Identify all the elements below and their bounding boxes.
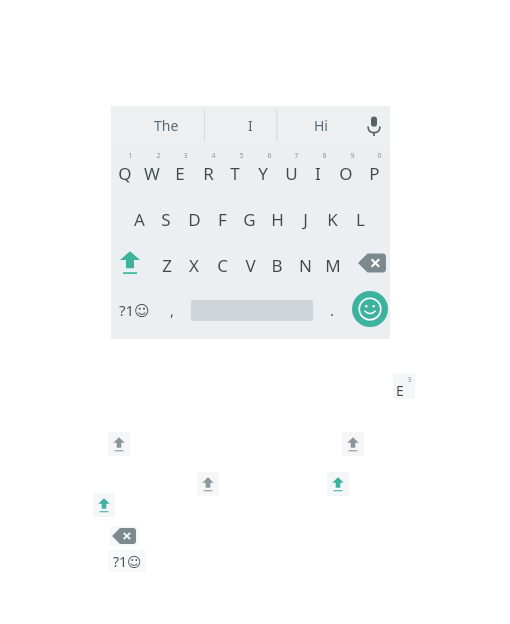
staticText: Z (162, 254, 172, 277)
staticText: E (396, 381, 404, 400)
button[interactable] (152, 196, 180, 238)
button[interactable]: I (219, 108, 281, 143)
button[interactable] (166, 149, 194, 193)
button[interactable] (208, 196, 236, 238)
staticText: 6 (267, 151, 272, 161)
button[interactable]: Shift (327, 472, 349, 496)
button[interactable]: . (318, 290, 346, 330)
button[interactable] (277, 149, 305, 193)
staticText: The (154, 116, 179, 135)
staticText: 4 (211, 151, 216, 161)
staticText: I (315, 162, 321, 185)
staticText: 5 (239, 151, 244, 161)
button[interactable]: Hi (290, 108, 352, 143)
button[interactable] (190, 290, 314, 330)
staticText: Q (118, 162, 132, 185)
staticText: N (299, 254, 312, 277)
button[interactable] (125, 196, 153, 238)
button[interactable]: , (157, 290, 187, 330)
button[interactable]: Shift (93, 493, 115, 517)
staticText: Hi (314, 116, 328, 135)
button[interactable]: The (131, 108, 201, 143)
staticText: X (189, 254, 199, 277)
button[interactable]: Shift (197, 472, 219, 496)
staticText: 0 (377, 151, 382, 161)
staticText: , (170, 300, 175, 320)
staticText: V (245, 254, 256, 277)
staticText: ?1☺ (113, 552, 142, 571)
staticText: Y (258, 162, 268, 185)
staticText: 3 (407, 375, 412, 385)
button[interactable] (319, 196, 347, 238)
staticText: C (217, 254, 228, 277)
button[interactable] (180, 196, 208, 238)
button[interactable] (222, 149, 250, 193)
button[interactable]: Shift (113, 242, 147, 284)
button[interactable] (393, 373, 415, 399)
button[interactable] (332, 149, 360, 193)
button[interactable] (208, 242, 236, 284)
staticText: F (218, 208, 227, 231)
staticText: U (285, 162, 298, 185)
button[interactable]: Emoji (350, 288, 390, 330)
staticText: 1 (128, 151, 133, 161)
button[interactable]: Backspace (354, 242, 390, 284)
staticText: K (327, 208, 338, 231)
button[interactable]: Shift (108, 432, 130, 456)
button[interactable] (264, 242, 292, 284)
button[interactable] (138, 149, 166, 193)
button[interactable]: Backspace (110, 526, 138, 546)
button[interactable]: ?1☺ (113, 290, 155, 330)
staticText: M (325, 254, 341, 277)
staticText: L (356, 208, 365, 231)
staticText: W (144, 162, 160, 185)
staticText: A (134, 208, 145, 231)
button[interactable]: ?1☺ (108, 550, 146, 572)
staticText: E (175, 162, 185, 185)
staticText: S (161, 208, 171, 231)
staticText: B (271, 254, 283, 277)
button[interactable] (319, 242, 347, 284)
button[interactable] (291, 196, 319, 238)
button[interactable] (263, 196, 291, 238)
staticText: J (303, 208, 308, 231)
button[interactable] (360, 149, 388, 193)
button[interactable]: Voice input (357, 108, 390, 143)
button[interactable] (249, 149, 277, 193)
button[interactable] (236, 242, 264, 284)
button[interactable] (180, 242, 208, 284)
staticText: . (330, 300, 335, 320)
button[interactable] (236, 196, 264, 238)
staticText: G (243, 208, 256, 231)
staticText: 7 (294, 151, 299, 161)
staticText: R (203, 162, 214, 185)
button[interactable] (153, 242, 181, 284)
staticText: 8 (322, 151, 327, 161)
button[interactable] (194, 149, 222, 193)
button[interactable] (111, 149, 139, 193)
staticText: 3 (183, 151, 188, 161)
staticText: D (188, 208, 201, 231)
button[interactable] (346, 196, 374, 238)
button[interactable]: Shift (342, 432, 364, 456)
staticText: P (369, 162, 380, 185)
staticText: I (248, 116, 253, 135)
button[interactable] (305, 149, 333, 193)
staticText: H (271, 208, 284, 231)
staticText: ?1☺ (119, 300, 150, 320)
staticText: 9 (350, 151, 355, 161)
staticText: 2 (156, 151, 161, 161)
staticText: T (230, 162, 240, 185)
button[interactable] (291, 242, 319, 284)
staticText: O (339, 162, 353, 185)
